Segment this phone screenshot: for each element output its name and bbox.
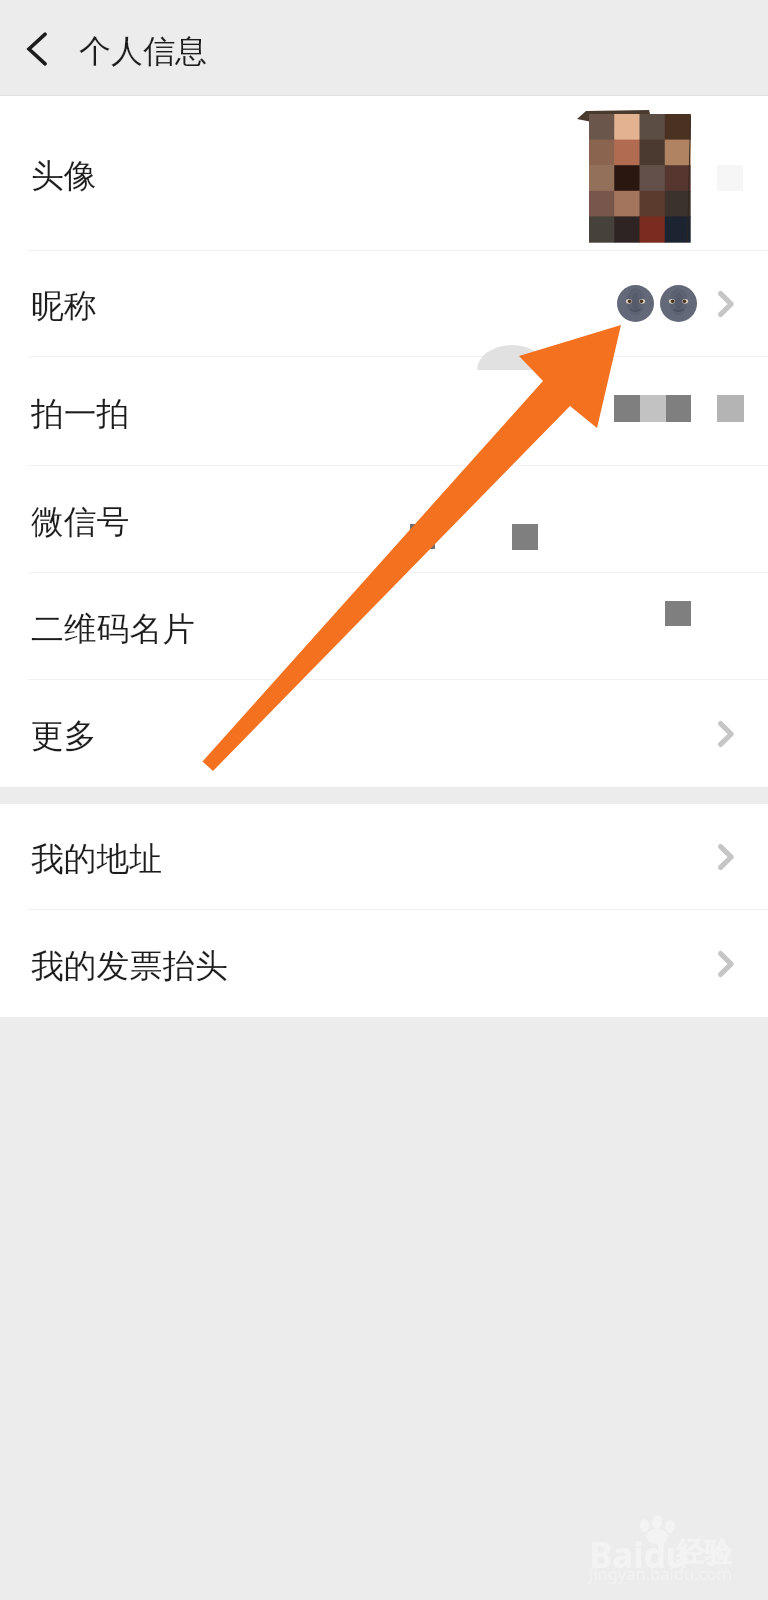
staticText: 更多 (31, 715, 97, 756)
button[interactable]: 二维码名片 (0, 573, 768, 679)
staticText: Baidu (589, 1531, 689, 1579)
button[interactable]: 拍一拍 (0, 357, 768, 465)
staticText: 我的地址 (31, 838, 163, 879)
button[interactable]: 我的地址 (0, 804, 768, 909)
staticText: 拍一拍 (31, 393, 130, 434)
button[interactable]: 更多 (0, 680, 768, 787)
staticText: 头像 (31, 155, 97, 196)
staticText: 二维码名片 (31, 608, 195, 649)
staticText: 昵称 (31, 285, 97, 326)
button[interactable]: 昵称 (0, 251, 768, 356)
staticText: 微信号 (31, 501, 130, 542)
button[interactable]: Back (9, 21, 65, 77)
button[interactable]: 微信号 (0, 466, 768, 572)
staticText: 我的发票抬头 (31, 945, 228, 986)
staticText: 个人信息 (79, 31, 207, 71)
button[interactable]: 头像 (0, 96, 768, 250)
button[interactable]: 我的发票抬头 (0, 910, 768, 1017)
staticText: 经验 (676, 1535, 732, 1570)
